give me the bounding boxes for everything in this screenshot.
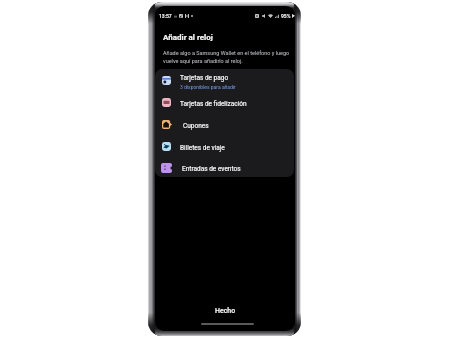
staticText: Tarjetas de fidelización: [180, 100, 247, 108]
staticText: 95%: [281, 13, 291, 19]
button[interactable]: Tarjetas de fidelización: [155, 91, 294, 113]
staticText: 3 disponibles para añadir: [180, 84, 236, 90]
staticText: Tarjetas de pago: [180, 74, 229, 82]
button[interactable]: Entradas de eventos: [155, 157, 294, 177]
button[interactable]: Cupones: [155, 113, 294, 135]
staticText: Añadir al reloj: [163, 33, 213, 42]
button[interactable]: Hecho: [155, 302, 295, 320]
staticText: Entradas de eventos: [182, 165, 241, 173]
button[interactable]: Billetes de viaje: [155, 135, 294, 157]
button[interactable]: Tarjetas de pago: [155, 69, 294, 91]
staticText: Billetes de viaje: [180, 144, 225, 152]
staticText: Hecho: [215, 307, 236, 315]
staticText: Añade algo a Samsung Wallet en el teléfo…: [163, 50, 290, 64]
staticText: 13:57: [159, 13, 172, 19]
staticText: Cupones: [183, 122, 209, 130]
